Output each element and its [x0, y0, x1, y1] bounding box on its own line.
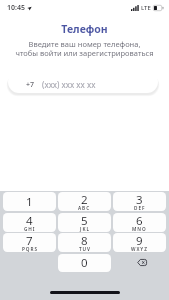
staticText: MNO	[132, 226, 147, 232]
staticText: DEF	[134, 205, 146, 211]
staticText: ABC	[78, 205, 91, 211]
staticText: (xxx) xxx xx xx	[42, 79, 96, 90]
button[interactable]: +7	[8, 71, 158, 93]
button[interactable]: 6	[113, 213, 166, 232]
staticText: 1	[26, 194, 33, 210]
staticText: WXYZ	[131, 246, 148, 252]
staticText: 4	[26, 213, 33, 229]
button[interactable]: Backspace	[113, 254, 166, 272]
staticText: 5	[81, 213, 88, 229]
button[interactable]: 0	[58, 254, 111, 272]
button[interactable]: 3	[113, 192, 166, 211]
button[interactable]: 5	[58, 213, 111, 232]
button[interactable]: 9	[113, 233, 166, 252]
staticText: Телефон	[0, 22, 169, 36]
staticText: PQRS	[22, 246, 38, 252]
staticText: 0	[81, 255, 88, 271]
button[interactable]: 7	[3, 233, 56, 252]
staticText: Введите ваш номер телефона, чтобы войти …	[0, 39, 169, 59]
button[interactable]: 1	[3, 192, 56, 211]
staticText: TUV	[79, 246, 91, 252]
button[interactable]: 2	[58, 192, 111, 211]
button[interactable]: 4	[3, 213, 56, 232]
staticText: 3	[136, 192, 143, 208]
staticText: 6	[136, 213, 143, 229]
staticText: GHI	[24, 226, 36, 232]
staticText: 9	[136, 233, 143, 249]
staticText: 8	[81, 233, 88, 249]
staticText: +7	[26, 80, 35, 90]
staticText: 2	[81, 192, 88, 208]
staticText: LTE	[141, 4, 151, 12]
staticText: 7	[26, 233, 33, 249]
staticText: JKL	[80, 226, 90, 232]
button[interactable]: 8	[58, 233, 111, 252]
staticText: 10:45	[7, 3, 25, 13]
